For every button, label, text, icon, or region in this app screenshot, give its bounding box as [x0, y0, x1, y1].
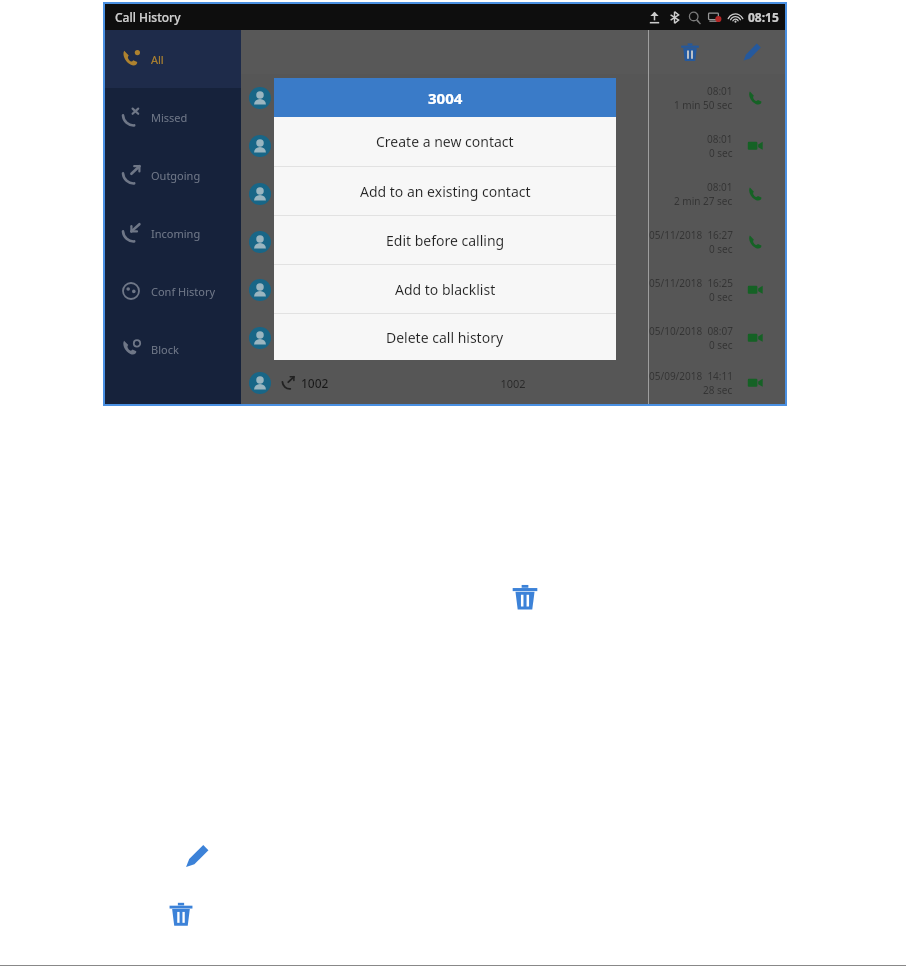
staticText: Missed — [151, 110, 188, 125]
button[interactable]: 1001 — [241, 170, 785, 218]
staticText: 05/09/2018 14:11 — [649, 369, 733, 383]
staticText: Outgoing — [151, 168, 201, 183]
button[interactable]: 3003 — [241, 314, 785, 362]
staticText: 1002 — [421, 376, 605, 391]
staticText — [421, 187, 605, 202]
button[interactable]: Conf History — [105, 262, 241, 320]
button[interactable]: Call — [733, 74, 777, 122]
staticText: 08:01 — [707, 132, 733, 146]
button[interactable]: Video call — [733, 362, 777, 404]
button[interactable]: 1002 — [241, 362, 785, 404]
staticText: 28 sec — [703, 383, 733, 397]
staticText: Edit before calling — [386, 231, 505, 250]
button[interactable]: Call — [733, 170, 777, 218]
button[interactable]: Delete call history — [274, 314, 616, 360]
staticText: 1001 — [301, 186, 421, 202]
button[interactable]: Add to an existing contact — [274, 167, 616, 215]
button[interactable]: Call — [733, 218, 777, 266]
staticText: 2 min 27 sec — [674, 194, 733, 208]
staticText: All — [151, 52, 164, 67]
staticText — [421, 139, 605, 154]
button[interactable]: Create a new contact — [274, 117, 616, 166]
button[interactable]: Missed — [105, 88, 241, 146]
staticText: 05/10/2018 08:07 — [649, 324, 733, 338]
button[interactable]: Video call — [733, 266, 777, 314]
button[interactable]: 3004 — [241, 218, 785, 266]
staticText: 0 sec — [709, 338, 733, 352]
button[interactable]: Video call — [733, 122, 777, 170]
staticText: Incoming — [151, 226, 201, 241]
staticText: 1 min 50 sec — [674, 98, 733, 112]
button[interactable]: Delete — [511, 583, 539, 611]
staticText — [421, 331, 605, 346]
button[interactable]: Block — [105, 320, 241, 378]
staticText: 05/11/2018 16:27 — [649, 228, 733, 242]
button[interactable]: Outgoing — [105, 146, 241, 204]
staticText: 08:01 — [707, 84, 733, 98]
button[interactable]: Incoming — [105, 204, 241, 262]
staticText: 08:01 — [707, 180, 733, 194]
staticText: 0 sec — [709, 290, 733, 304]
staticText: 3004 — [428, 88, 463, 108]
staticText: 1 — [301, 138, 421, 154]
button[interactable]: Edit — [184, 843, 210, 869]
button[interactable]: Add to blacklist — [274, 265, 616, 313]
staticText: Call History — [115, 9, 181, 25]
button[interactable]: All — [105, 30, 241, 88]
staticText: 0 sec — [709, 242, 733, 256]
staticText — [421, 283, 605, 298]
staticText: 3004 — [301, 234, 421, 250]
staticText: 05/11/2018 16:25 — [649, 276, 733, 290]
staticText: Create a new contact — [376, 132, 514, 151]
staticText: 3004 — [421, 91, 605, 106]
staticText: Delete call history — [386, 328, 504, 347]
staticText: 0 sec — [709, 146, 733, 160]
button[interactable]: Edit — [737, 37, 767, 67]
staticText: 1002 — [301, 375, 421, 391]
button[interactable]: 3004(3) — [241, 74, 785, 122]
staticText: Conf History — [151, 284, 216, 299]
button[interactable]: 3002 — [241, 266, 785, 314]
button[interactable]: Edit before calling — [274, 216, 616, 264]
staticText — [421, 235, 605, 250]
staticText: 3002 — [301, 282, 421, 298]
staticText: 08:15 — [748, 9, 779, 25]
button[interactable]: Delete — [168, 901, 194, 927]
staticText: Add to blacklist — [395, 280, 496, 299]
button[interactable]: Video call — [733, 314, 777, 362]
staticText: Add to an existing contact — [360, 182, 531, 201]
staticText: 3003 — [301, 330, 421, 346]
staticText: Block — [151, 342, 179, 357]
button[interactable]: 1 — [241, 122, 785, 170]
button[interactable]: Delete — [675, 37, 705, 67]
